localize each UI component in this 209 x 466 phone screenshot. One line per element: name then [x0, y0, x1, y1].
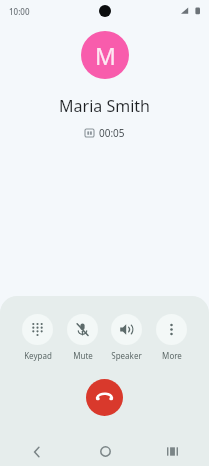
button[interactable]: Back: [22, 437, 52, 466]
staticText: Keypad: [24, 350, 52, 361]
button[interactable]: Home: [90, 437, 120, 466]
button[interactable]: Speaker: [109, 313, 144, 362]
button[interactable]: Keypad: [20, 313, 55, 362]
staticText: 00:05: [99, 126, 125, 140]
staticText: 10:00: [9, 6, 30, 17]
staticText: Mute: [73, 350, 93, 361]
button[interactable]: End call: [86, 379, 123, 416]
button[interactable]: More: [154, 313, 189, 362]
staticText: M: [95, 40, 116, 71]
button[interactable]: Recent apps: [157, 437, 187, 466]
staticText: Maria Smith: [0, 95, 209, 117]
button[interactable]: Mute: [65, 313, 100, 362]
staticText: More: [162, 350, 182, 361]
staticText: Speaker: [111, 350, 142, 361]
